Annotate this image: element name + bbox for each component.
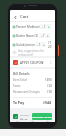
staticText: Item Total	[13, 78, 27, 82]
staticText: APPLY COUPON	[20, 61, 44, 65]
staticText: ₹30	[47, 90, 52, 94]
button[interactable]: APPLY COUPON	[10, 58, 55, 67]
staticText: ₹544	[43, 100, 52, 105]
button[interactable]: -	[40, 24, 51, 29]
staticText: Taxes	[13, 84, 21, 88]
staticText: -	[41, 34, 42, 38]
button[interactable]: Back	[13, 15, 18, 20]
staticText: 1	[43, 34, 45, 38]
staticText: ₹24	[47, 84, 52, 88]
staticText: Delivery in	[20, 113, 32, 119]
button[interactable]: -	[35, 42, 46, 47]
staticText: Cart	[20, 14, 29, 20]
staticText: -	[37, 43, 38, 47]
button[interactable]: PROCEED TO PAY	[32, 113, 52, 120]
staticText: To Pay	[13, 100, 25, 105]
staticText: 1	[39, 43, 41, 47]
staticText: Butter Naan (2)	[16, 34, 39, 38]
staticText: Restaurant Charges	[13, 90, 40, 94]
staticText: Gulab Jamun	[16, 43, 35, 47]
staticText: Paneer Makhani	[16, 25, 40, 29]
staticText: Bill Details	[13, 71, 30, 75]
staticText: PROCEED TO PAY	[32, 115, 52, 118]
staticText: 30-35 min	[20, 119, 32, 120]
staticText: ₹490	[45, 78, 52, 82]
staticText: +	[48, 25, 50, 29]
button[interactable]: Delivery in	[13, 113, 32, 120]
button[interactable]: -	[39, 33, 50, 38]
staticText: -	[42, 25, 43, 29]
staticText: Any suggestions for restaurant?	[18, 49, 52, 56]
button[interactable]: Any suggestions for restaurant?	[10, 49, 55, 56]
staticText: +	[47, 34, 49, 38]
staticText: 1	[44, 25, 46, 29]
staticText: +	[43, 43, 45, 47]
staticText: ₹120	[48, 41, 52, 49]
